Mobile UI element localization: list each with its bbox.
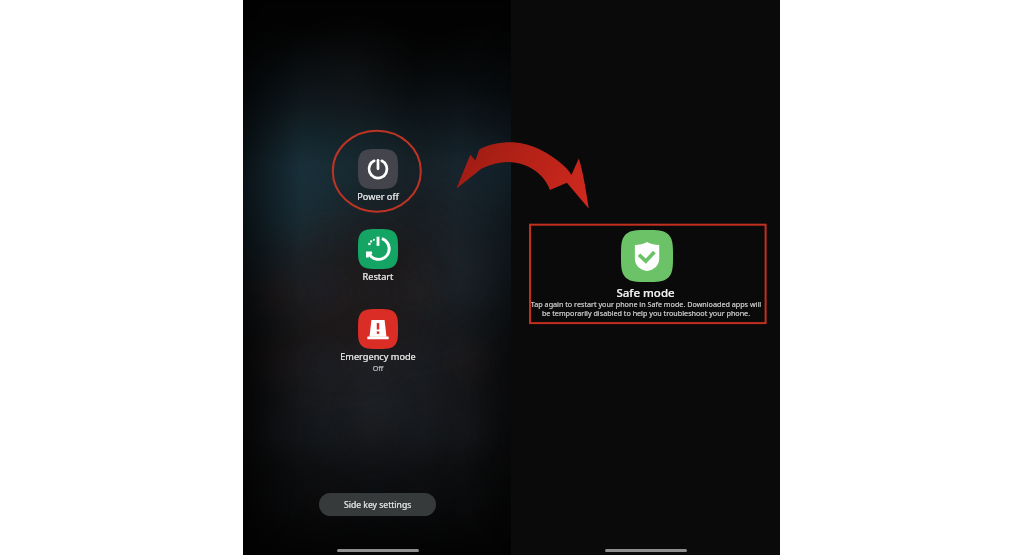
button[interactable]: Emergency mode — [318, 309, 438, 373]
staticText: Side key settings — [344, 499, 412, 511]
button[interactable]: Side key settings — [319, 493, 436, 516]
staticText: Power off — [318, 190, 438, 203]
staticText: Restart — [318, 270, 438, 283]
button[interactable]: Power off — [318, 149, 438, 203]
button[interactable]: Restart — [318, 229, 438, 283]
staticText: Safe mode — [511, 285, 780, 301]
staticText: Tap again to restart your phone in Safe … — [528, 299, 764, 318]
staticText: Off — [318, 363, 438, 373]
staticText: Emergency mode — [318, 350, 438, 363]
button[interactable]: Safe mode — [621, 230, 673, 282]
